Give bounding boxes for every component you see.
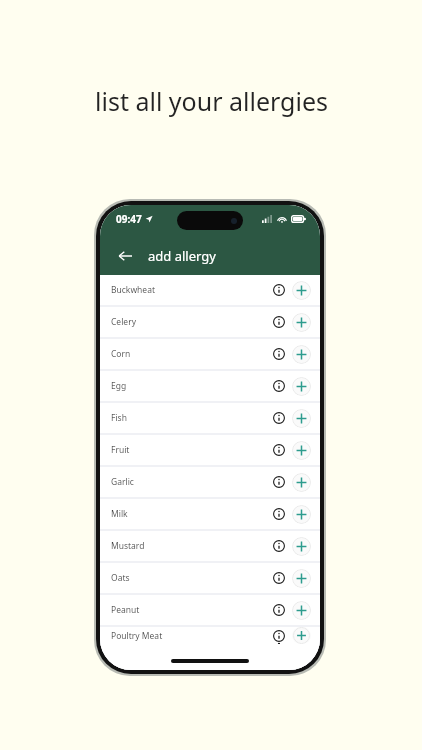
button[interactable]: Oats: [100, 563, 320, 593]
button[interactable]: Information about Fish: [269, 408, 289, 428]
button[interactable]: Information about Buckwheat: [269, 280, 289, 300]
staticText: Oats: [111, 572, 130, 584]
staticText: Fruit: [111, 444, 130, 456]
button[interactable]: Information about Peanut: [269, 600, 289, 620]
staticText: Egg: [111, 380, 127, 392]
button[interactable]: Fruit: [100, 435, 320, 465]
button[interactable]: Garlic: [100, 467, 320, 497]
button[interactable]: Corn: [100, 339, 320, 369]
button[interactable]: Information about Milk: [269, 504, 289, 524]
staticText: Milk: [111, 508, 128, 520]
button[interactable]: Add Fish: [292, 409, 311, 428]
staticText: Peanut: [111, 604, 140, 616]
button[interactable]: Back: [112, 243, 138, 269]
staticText: Buckwheat: [111, 284, 155, 296]
button[interactable]: Information about Fruit: [269, 440, 289, 460]
button[interactable]: Information about Egg: [269, 376, 289, 396]
button[interactable]: Add Peanut: [292, 601, 311, 620]
button[interactable]: Celery: [100, 307, 320, 337]
button[interactable]: Poultry Meat: [100, 627, 320, 644]
staticText: Corn: [111, 348, 131, 360]
staticText: Garlic: [111, 476, 134, 488]
button[interactable]: Information about Oats: [269, 568, 289, 588]
staticText: add allergy: [148, 247, 216, 265]
button[interactable]: Add Oats: [292, 569, 311, 588]
staticText: Fish: [111, 412, 127, 424]
button[interactable]: Information about Garlic: [269, 472, 289, 492]
button[interactable]: Add Celery: [292, 313, 311, 332]
button[interactable]: Add Mustard: [292, 537, 311, 556]
staticText: list all your allergies: [95, 84, 328, 118]
button[interactable]: Add Poultry Meat: [292, 627, 311, 644]
button[interactable]: Egg: [100, 371, 320, 401]
button[interactable]: Add Fruit: [292, 441, 311, 460]
button[interactable]: Information about Celery: [269, 312, 289, 332]
button[interactable]: Add Garlic: [292, 473, 311, 492]
button[interactable]: Information about Mustard: [269, 536, 289, 556]
button[interactable]: Add Buckwheat: [292, 281, 311, 300]
button[interactable]: Mustard: [100, 531, 320, 561]
staticText: 09:47: [116, 212, 142, 226]
button[interactable]: Information about Poultry Meat: [269, 627, 289, 644]
button[interactable]: Fish: [100, 403, 320, 433]
staticText: Mustard: [111, 540, 145, 552]
button[interactable]: Add Milk: [292, 505, 311, 524]
staticText: Celery: [111, 316, 136, 328]
button[interactable]: Add Corn: [292, 345, 311, 364]
button[interactable]: Milk: [100, 499, 320, 529]
button[interactable]: Information about Corn: [269, 344, 289, 364]
button[interactable]: Buckwheat: [100, 275, 320, 305]
staticText: Poultry Meat: [111, 630, 163, 642]
button[interactable]: Add Egg: [292, 377, 311, 396]
button[interactable]: Peanut: [100, 595, 320, 625]
